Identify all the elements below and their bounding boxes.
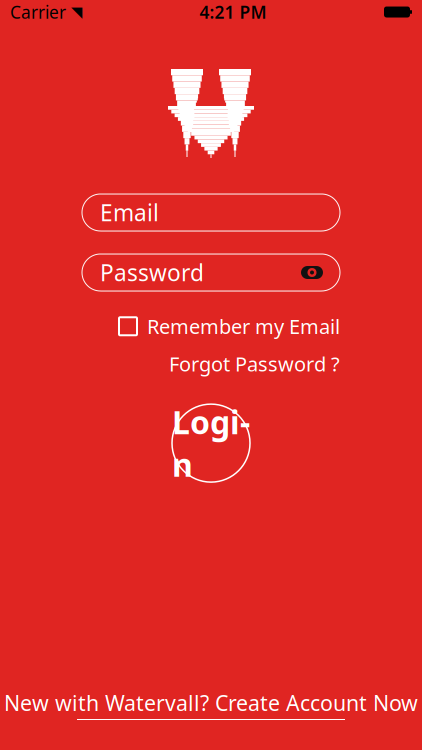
staticText: Password (100, 257, 204, 287)
staticText: Remember my Email (147, 313, 340, 340)
staticText: 4:21 PM (199, 0, 266, 23)
staticText (66, 0, 71, 23)
button[interactable]: Password (82, 254, 340, 291)
button[interactable]: New with Watervall? Create Account Now (4, 689, 418, 720)
staticText: Login (172, 401, 250, 486)
button[interactable]: Remember my Email (119, 313, 340, 340)
staticText: Carrier (10, 0, 66, 23)
button[interactable]: Forgot Password ? (169, 351, 340, 377)
staticText: Forgot Password ? (169, 351, 340, 377)
button[interactable]: Login (172, 404, 250, 482)
staticText: New with Watervall? Create Account Now (4, 689, 418, 717)
button[interactable]: Email (82, 194, 340, 231)
staticText: ◥ (71, 4, 82, 20)
staticText: Email (100, 197, 159, 227)
